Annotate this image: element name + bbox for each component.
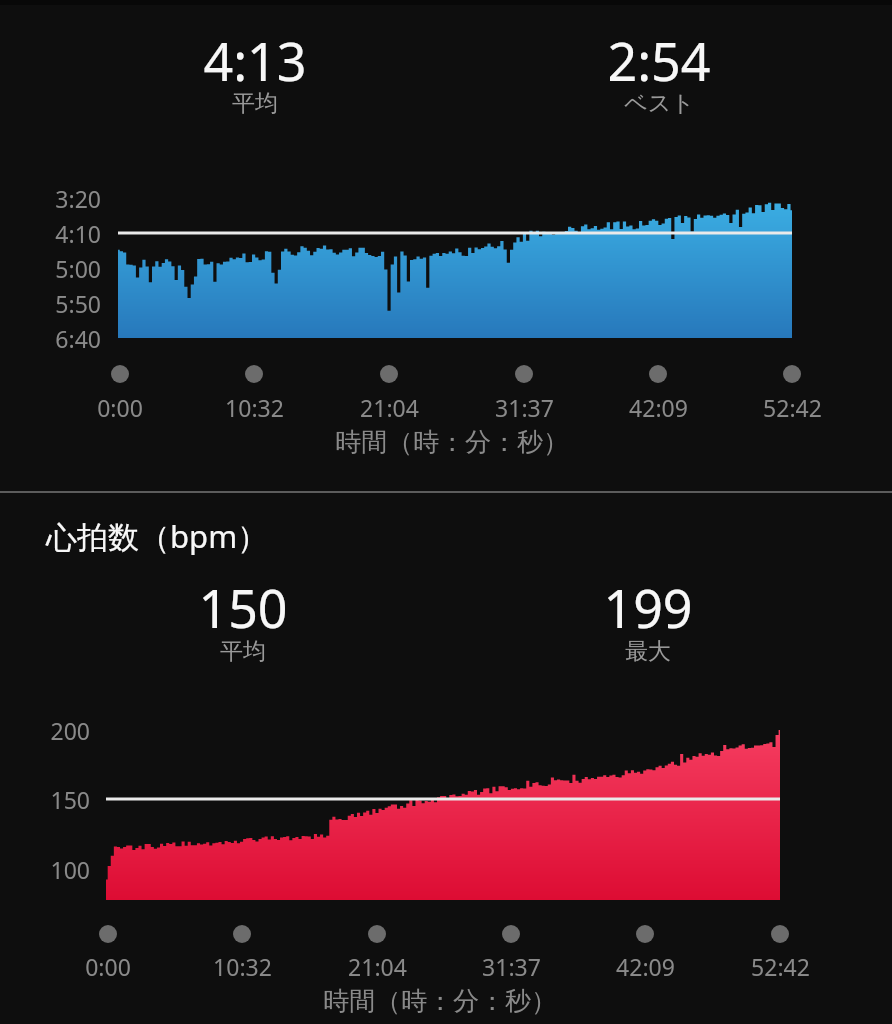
button[interactable]: 199 [533,572,763,636]
staticText: 199 [603,572,693,636]
button[interactable]: 150 [128,572,358,636]
staticText: 200 [50,715,90,746]
staticText: 42:09 [616,951,675,982]
staticText: 最大 [625,637,671,666]
staticText: 42:09 [629,392,688,423]
staticText: 時間（時：分：秒） [323,985,557,1018]
staticText: 0:00 [97,392,143,423]
staticText: 5:50 [55,288,101,319]
staticText: 52:42 [763,392,822,423]
staticText: 21:04 [348,951,407,982]
staticText: 3:20 [55,183,101,214]
staticText: 2:54 [607,25,711,89]
staticText: 4:10 [55,218,101,249]
staticText: 150 [50,784,90,815]
staticText: 5:00 [55,253,101,284]
staticText: 31:37 [495,392,554,423]
staticText: 52:42 [751,951,810,982]
staticText: 平均 [220,637,266,666]
staticText: 10:32 [213,951,272,982]
staticText: 100 [50,854,90,885]
staticText: 21:04 [360,392,419,423]
staticText: 時間（時：分：秒） [335,426,569,459]
button[interactable]: 2:54 [544,25,774,89]
staticText: 6:40 [55,323,101,354]
staticText: 4:13 [203,25,307,89]
button[interactable]: 心拍数（bpm） [46,512,466,560]
staticText: 31:37 [482,951,541,982]
staticText: 心拍数（bpm） [46,515,269,557]
staticText: 10:32 [225,392,284,423]
staticText: 平均 [232,89,278,118]
button[interactable]: 4:13 [140,25,370,89]
staticText: 150 [198,572,288,636]
staticText: 0:00 [85,951,131,982]
staticText: ベスト [624,89,695,118]
